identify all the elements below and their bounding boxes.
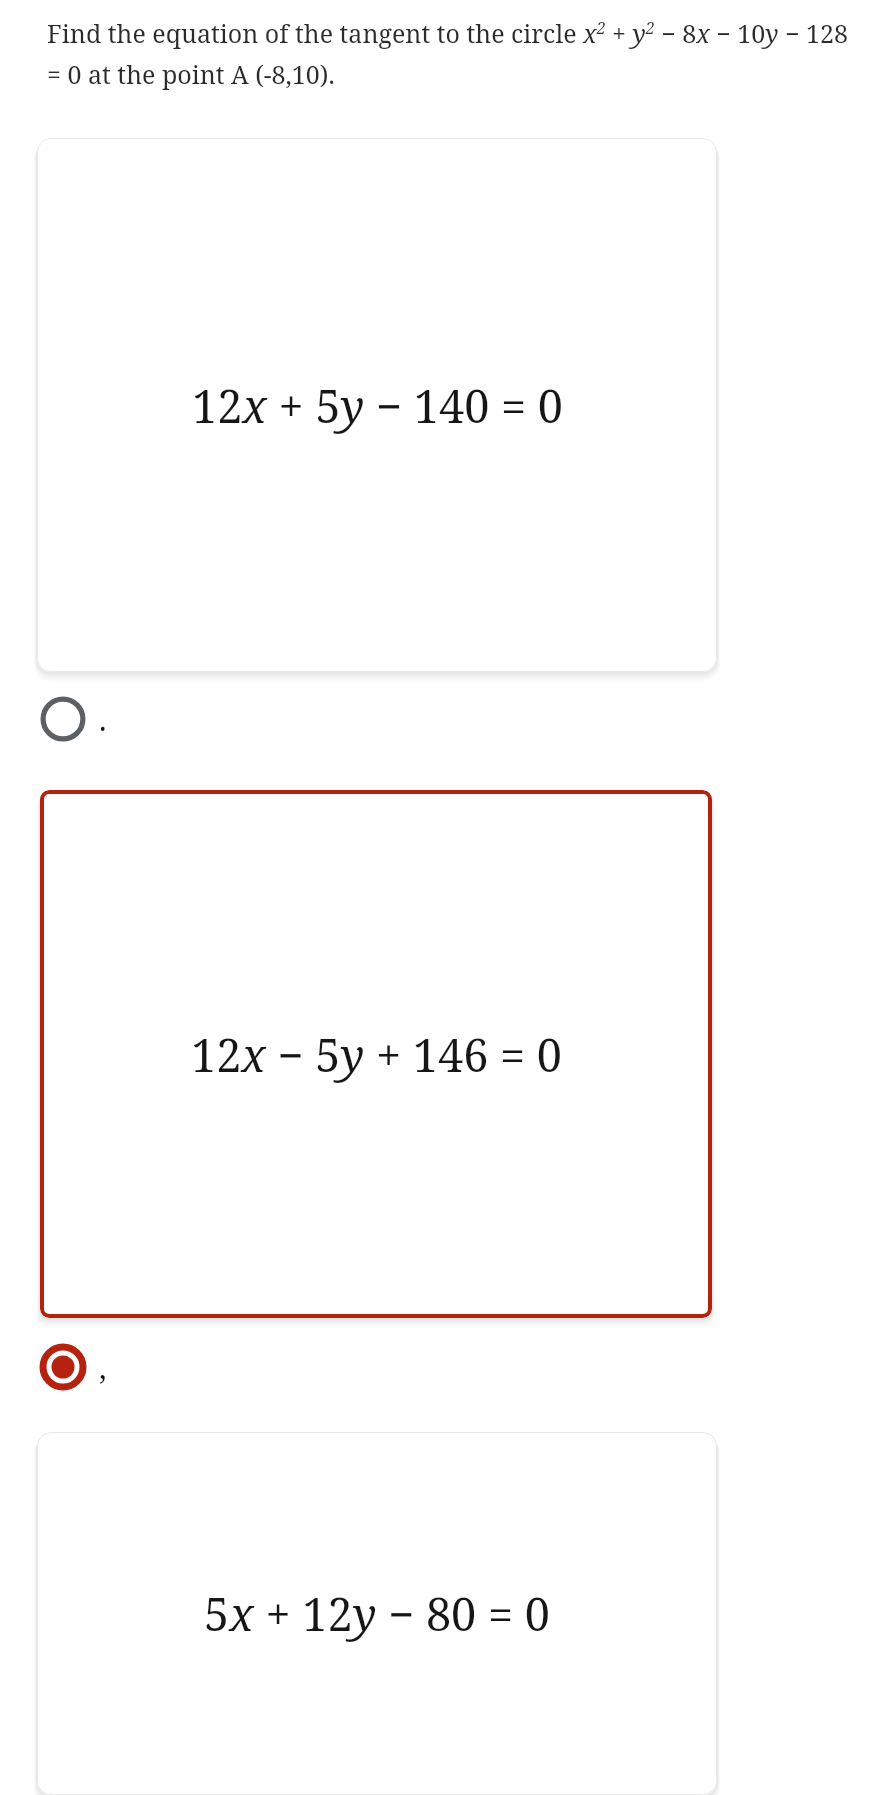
staticText: 5x + 12y − 80 = 0: [204, 1583, 550, 1644]
button[interactable]: Option 2 selected: 12x - 5y + 146 = 0: [38, 1342, 107, 1392]
staticText: Find the equation of the tangent to the …: [47, 16, 856, 92]
staticText: ,: [99, 1347, 107, 1388]
button[interactable]: 5x + 12y − 80 = 0: [37, 1432, 717, 1795]
staticText: 12x + 5y − 140 = 0: [192, 375, 563, 436]
staticText: 12x − 5y + 146 = 0: [191, 1024, 562, 1085]
button[interactable]: 12x − 5y + 146 = 0: [40, 790, 712, 1318]
button[interactable]: 12x + 5y − 140 = 0: [37, 138, 717, 672]
button[interactable]: Option 1: 12x + 5y - 140 = 0: [38, 694, 107, 744]
staticText: .: [99, 699, 107, 740]
